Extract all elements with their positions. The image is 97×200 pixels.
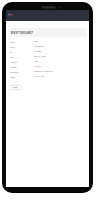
staticText: Memo: [10, 76, 34, 78]
staticText: Paid: [34, 40, 38, 43]
button[interactable]: INST1003487: [9, 28, 87, 37]
staticText: Date: [10, 56, 34, 58]
staticText: Status: [10, 41, 34, 43]
staticText: Mar 15, 2024: [34, 55, 46, 58]
staticText: THANK YOU: [34, 75, 45, 78]
staticText: INST1003487: [11, 30, 34, 35]
button[interactable]: ← Back: [9, 85, 22, 90]
staticText: -100.00: [34, 65, 41, 68]
staticText: Amount: [10, 66, 34, 68]
staticText: From: [10, 46, 34, 48]
staticText: USD: [34, 60, 38, 63]
staticText: Currency: [10, 61, 34, 63]
staticText: ← Back: [12, 86, 19, 89]
staticText: Reference: [10, 71, 34, 73]
staticText: UCXPROD1: [34, 45, 45, 48]
staticText: To: [10, 51, 34, 53]
staticText: SWEDISH-AL-0287-TX: [34, 70, 54, 73]
staticText: TUCKER: [34, 50, 42, 53]
